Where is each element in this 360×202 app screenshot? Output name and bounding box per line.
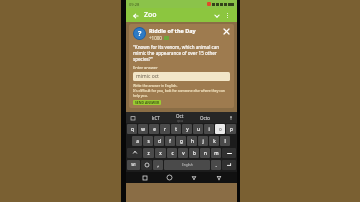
button[interactable]: Clipboard (129, 114, 136, 121)
staticText: SEND ANSWER (135, 100, 160, 105)
staticText: mimic oct (136, 73, 159, 80)
staticText: t (175, 126, 177, 132)
staticText: Write the answer in English. (133, 83, 178, 88)
staticText: o (219, 126, 222, 132)
staticText: m (214, 150, 219, 156)
staticText: Oct (176, 113, 184, 119)
button[interactable]: u (193, 124, 203, 134)
button[interactable]: Shift (127, 148, 142, 158)
button[interactable]: h (187, 136, 197, 146)
button[interactable]: e (149, 124, 159, 134)
staticText: v (182, 150, 185, 156)
staticText: y (186, 126, 189, 132)
staticText: r (164, 126, 166, 132)
button[interactable]: d (154, 136, 164, 146)
button[interactable]: More options (222, 10, 233, 21)
staticText: d (158, 138, 161, 144)
button[interactable]: j (198, 136, 208, 146)
button[interactable]: t (171, 124, 181, 134)
staticText: Zoo (144, 10, 157, 20)
button[interactable]: Backspace (222, 148, 236, 158)
button[interactable]: p (226, 124, 236, 134)
staticText: !#1 (131, 163, 136, 167)
button[interactable]: Expand (211, 10, 222, 21)
button[interactable]: . (211, 160, 221, 170)
staticText: u (197, 126, 200, 132)
staticText: b (193, 150, 196, 156)
staticText: j (202, 138, 204, 144)
staticText: g (180, 138, 183, 144)
button[interactable]: n (200, 148, 210, 158)
button[interactable]: Enter (222, 160, 236, 170)
staticText: English (182, 163, 193, 167)
button[interactable]: q (127, 124, 137, 134)
button[interactable]: !#1 (127, 160, 140, 170)
staticText: f (169, 138, 171, 144)
button[interactable]: w (138, 124, 148, 134)
button[interactable]: v (178, 148, 188, 158)
button[interactable]: SEND ANSWER (133, 100, 161, 105)
staticText: c (171, 150, 174, 156)
staticText: p (230, 126, 233, 132)
button[interactable]: , (153, 160, 163, 170)
staticText: z (147, 150, 150, 156)
staticText: s (147, 138, 150, 144)
button[interactable]: g (176, 136, 186, 146)
button[interactable]: m (211, 148, 221, 158)
button[interactable]: x (155, 148, 166, 158)
staticText: +1000 (149, 35, 162, 41)
button[interactable]: c (167, 148, 177, 158)
staticText: q (131, 126, 134, 132)
staticText: a (136, 138, 139, 144)
button[interactable]: Recents (139, 172, 150, 183)
button[interactable]: l (220, 136, 230, 146)
button[interactable]: Back (130, 10, 141, 21)
staticText: w (141, 126, 145, 132)
staticText: It's difficult for you, look for someone… (133, 88, 230, 98)
button[interactable]: Voice input (227, 114, 234, 121)
staticText: l (224, 138, 226, 144)
staticText: h (191, 138, 194, 144)
button[interactable]: Back (188, 172, 199, 183)
staticText: k (213, 138, 216, 144)
button[interactable]: r (160, 124, 170, 134)
staticText: e (153, 126, 156, 132)
button[interactable]: f (165, 136, 175, 146)
button[interactable]: b (189, 148, 199, 158)
button[interactable]: ? (129, 24, 234, 108)
button[interactable]: English (164, 160, 210, 170)
button[interactable]: Emoji (141, 160, 152, 170)
staticText: n (204, 150, 207, 156)
staticText: ? (138, 29, 142, 39)
button[interactable]: Close (222, 27, 230, 35)
staticText: Riddle of the Day (149, 27, 196, 34)
staticText: kCT (152, 115, 160, 121)
staticText: Octo (200, 115, 211, 121)
staticText: "Known for its venom, which animal can m… (133, 44, 230, 62)
button[interactable]: y (182, 124, 192, 134)
staticText: , (157, 162, 159, 168)
button[interactable]: s (143, 136, 153, 146)
staticText: . (215, 162, 217, 168)
staticText: 09:28 (129, 2, 140, 7)
staticText: opus (177, 119, 184, 123)
button[interactable]: z (143, 148, 154, 158)
button[interactable]: mimic oct (133, 72, 230, 81)
staticText: Enter answer (133, 65, 158, 70)
button[interactable]: Home (164, 172, 175, 183)
button[interactable]: i (204, 124, 214, 134)
button[interactable]: a (132, 136, 142, 146)
button[interactable]: Keyboard toggle (213, 172, 224, 183)
staticText: x (159, 150, 162, 156)
button[interactable]: o (215, 124, 225, 134)
button[interactable]: k (209, 136, 219, 146)
staticText: i (208, 126, 210, 132)
